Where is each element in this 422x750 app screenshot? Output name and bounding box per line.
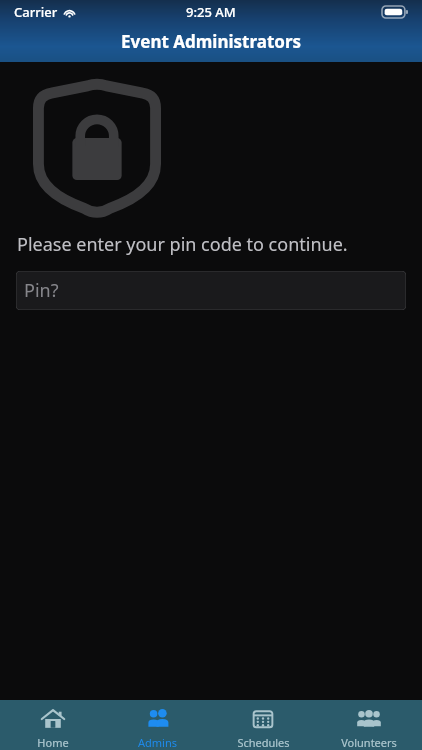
staticText: Please enter your pin code to continue. [17, 232, 348, 257]
staticText: Schedules [237, 735, 290, 750]
staticText: 9:25 AM [186, 3, 236, 21]
other: Home [40, 706, 66, 732]
button[interactable]: Admins [105, 700, 210, 750]
other: Schedules [250, 706, 276, 732]
button[interactable]: Home [0, 700, 105, 750]
staticText: Pin? [24, 278, 59, 303]
staticText: Carrier [14, 3, 58, 21]
button[interactable]: Pin? [16, 271, 406, 310]
other: Volunteers [356, 706, 382, 732]
other: Admins [145, 706, 171, 732]
staticText: Volunteers [341, 735, 397, 750]
staticText: Admins [138, 735, 177, 750]
button[interactable]: Volunteers [316, 700, 422, 750]
staticText: Home [37, 735, 69, 750]
button[interactable]: Schedules [210, 700, 316, 750]
staticText: Event Administrators [121, 30, 302, 53]
